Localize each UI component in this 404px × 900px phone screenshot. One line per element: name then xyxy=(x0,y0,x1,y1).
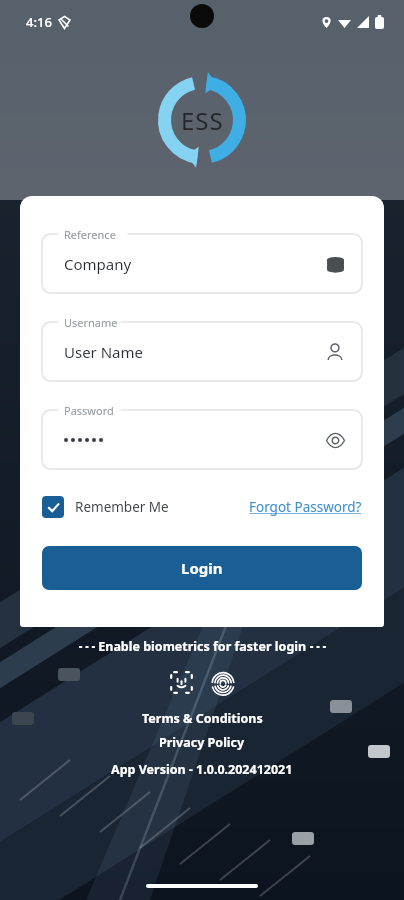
button[interactable]: Login xyxy=(42,546,362,590)
button[interactable]: Fingerprint login xyxy=(208,667,238,697)
button[interactable]: Remember Me xyxy=(42,496,169,518)
staticText: Password xyxy=(64,403,114,418)
button[interactable]: Face ID login xyxy=(166,667,196,697)
staticText: Terms & Conditions xyxy=(142,710,263,727)
staticText: User Name xyxy=(64,342,144,362)
staticText: Company xyxy=(64,254,132,274)
staticText: App Version - 1.0.0.202412021 xyxy=(111,761,293,778)
button[interactable]: Show password xyxy=(322,427,348,453)
staticText: ESS xyxy=(181,104,224,137)
button[interactable]: Privacy Policy xyxy=(159,734,245,751)
staticText: Remember Me xyxy=(75,498,169,516)
staticText: Reference xyxy=(64,227,116,242)
button[interactable]: Forgot Password? xyxy=(249,498,362,516)
staticText: 4:16 xyxy=(26,13,52,31)
staticText: Enable biometrics for faster login xyxy=(95,638,310,655)
button[interactable]: Select company database xyxy=(322,251,348,277)
button[interactable]: Username xyxy=(322,339,348,365)
staticText: Privacy Policy xyxy=(159,734,245,751)
staticText: Forgot Password? xyxy=(249,498,362,516)
staticText: Username xyxy=(64,315,118,330)
staticText: Login xyxy=(181,558,223,578)
button[interactable]: Terms & Conditions xyxy=(142,710,263,727)
